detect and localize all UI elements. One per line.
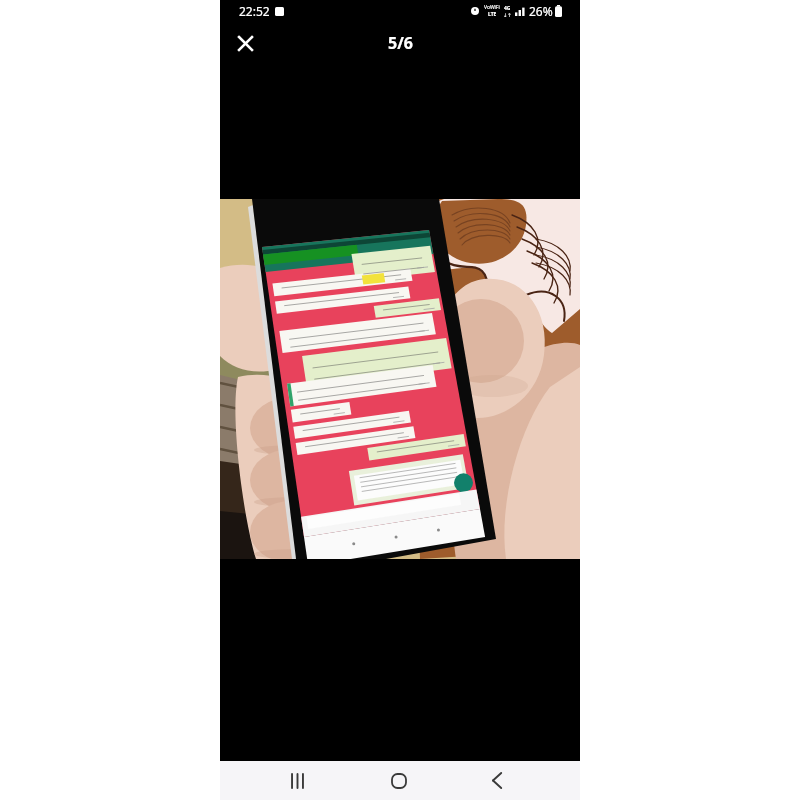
staticText: 5/6 bbox=[388, 32, 413, 54]
staticText: 4G bbox=[504, 5, 511, 12]
staticText: 26% bbox=[529, 3, 553, 19]
staticText: VoWiFi bbox=[484, 4, 500, 11]
staticText: ↓↑ bbox=[503, 12, 512, 18]
button[interactable]: Back bbox=[477, 761, 517, 800]
button[interactable]: Recents bbox=[277, 761, 317, 800]
button[interactable]: Home bbox=[379, 761, 419, 800]
staticText: LTE bbox=[488, 11, 497, 18]
button[interactable]: Close bbox=[226, 24, 264, 62]
staticText: 22:52 bbox=[239, 3, 270, 19]
button[interactable]: Photo 5 of 6 bbox=[220, 199, 580, 559]
